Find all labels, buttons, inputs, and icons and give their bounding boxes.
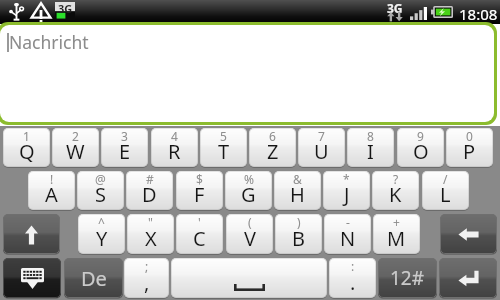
button[interactable]: 6	[249, 128, 296, 167]
staticText: )	[297, 214, 301, 230]
button[interactable]: 1	[3, 128, 50, 167]
button[interactable]: &	[274, 171, 321, 210]
staticText: 12#	[390, 265, 425, 291]
button[interactable]: 12#	[378, 258, 437, 298]
button[interactable]: Space	[171, 258, 327, 298]
button[interactable]: Backspace	[440, 214, 497, 254]
staticText: 9	[417, 128, 424, 144]
staticText: ,	[144, 269, 150, 296]
button[interactable]: $	[176, 171, 223, 210]
staticText: J	[344, 181, 350, 208]
staticText: *	[343, 171, 350, 187]
button[interactable]: Nachricht	[0, 25, 494, 122]
button[interactable]: )	[275, 214, 322, 254]
staticText: O	[413, 138, 429, 165]
staticText: 0	[466, 128, 473, 144]
button[interactable]: *	[323, 171, 370, 210]
staticText: U	[314, 138, 329, 165]
staticText: E	[119, 138, 131, 165]
button[interactable]: (	[226, 214, 273, 254]
staticText: 3	[121, 128, 128, 144]
staticText: :	[351, 258, 355, 274]
staticText: #	[146, 171, 154, 187]
button[interactable]: Hide keyboard	[3, 258, 61, 298]
staticText: I	[367, 138, 374, 165]
button[interactable]: 4	[151, 128, 198, 167]
staticText: -	[346, 214, 350, 230]
staticText: !	[50, 171, 54, 187]
staticText: H	[290, 181, 305, 208]
staticText: @	[95, 171, 106, 187]
staticText: K	[389, 181, 402, 208]
staticText: M	[387, 225, 406, 252]
button[interactable]: ?	[372, 171, 419, 210]
staticText: 8	[367, 128, 374, 144]
staticText: '	[198, 214, 201, 230]
staticText: .	[350, 269, 356, 296]
staticText: 5	[220, 128, 227, 144]
staticText: +	[393, 214, 400, 230]
button[interactable]: 5	[200, 128, 247, 167]
button[interactable]: De	[64, 258, 123, 298]
staticText: $	[196, 171, 203, 187]
staticText: T	[218, 138, 230, 165]
staticText: "	[148, 214, 153, 230]
button[interactable]: %	[225, 171, 272, 210]
staticText: B	[292, 225, 305, 252]
button[interactable]: '	[176, 214, 223, 254]
staticText: L	[440, 181, 451, 208]
staticText: 18:08	[459, 4, 498, 24]
button[interactable]: ;	[124, 258, 169, 298]
button[interactable]: Enter	[439, 258, 497, 298]
staticText: ?	[393, 171, 399, 187]
staticText: Nachricht	[9, 30, 89, 54]
staticText: /	[443, 171, 448, 187]
button[interactable]: !	[28, 171, 75, 210]
staticText: 4	[171, 128, 178, 144]
staticText: A	[45, 181, 58, 208]
staticText: R	[168, 138, 181, 165]
staticText: %	[244, 171, 254, 187]
staticText: ^	[98, 214, 105, 230]
staticText: Y	[96, 225, 108, 252]
staticText: V	[244, 225, 256, 252]
staticText: 3G	[58, 1, 73, 16]
staticText: Z	[267, 138, 279, 165]
button[interactable]: +	[373, 214, 420, 254]
staticText: P	[463, 138, 476, 165]
staticText: 2	[72, 128, 79, 144]
staticText: C	[193, 225, 206, 252]
button[interactable]: "	[127, 214, 174, 254]
staticText: De	[81, 265, 107, 292]
staticText: W	[66, 138, 85, 165]
button[interactable]: Shift	[3, 214, 60, 254]
button[interactable]: 9	[397, 128, 444, 167]
button[interactable]: 3	[101, 128, 148, 167]
staticText: (	[248, 214, 252, 230]
button[interactable]: #	[126, 171, 173, 210]
staticText: D	[142, 181, 157, 208]
staticText: 3G	[387, 0, 403, 16]
staticText: 6	[269, 128, 276, 144]
button[interactable]: 7	[298, 128, 345, 167]
staticText: &	[293, 171, 302, 187]
button[interactable]: :	[329, 258, 376, 298]
staticText: 7	[318, 128, 325, 144]
button[interactable]: -	[324, 214, 371, 254]
staticText: Q	[19, 138, 35, 165]
staticText: X	[145, 225, 157, 252]
button[interactable]: /	[422, 171, 469, 210]
staticText: 1	[23, 128, 30, 144]
staticText: S	[95, 181, 106, 208]
staticText: N	[340, 225, 356, 252]
button[interactable]: 8	[347, 128, 394, 167]
button[interactable]: 2	[52, 128, 99, 167]
staticText: ;	[145, 258, 149, 274]
button[interactable]: 0	[446, 128, 493, 167]
staticText: G	[241, 181, 256, 208]
button[interactable]: @	[77, 171, 124, 210]
button[interactable]: ^	[78, 214, 125, 254]
staticText: F	[194, 181, 205, 208]
